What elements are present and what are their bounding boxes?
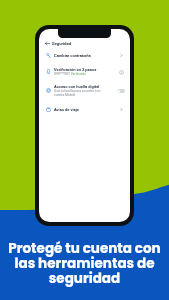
staticText: Usá tu huella para acceder a tu cuenta M… (54, 89, 101, 97)
button[interactable]: Verificación en 2 pasos (39, 63, 130, 80)
staticText: Acceso con huella digital (54, 84, 100, 89)
other: More info (117, 68, 125, 76)
staticText: Cambiar contraseña (54, 53, 91, 58)
button[interactable]: Cambiar contraseña (39, 47, 130, 63)
other: Back (45, 41, 50, 46)
staticText: Seguridad (52, 41, 72, 46)
staticText: Protegé tu cuenta con las herramientas d… (3, 239, 166, 288)
staticText: 099***987 Verificado (54, 72, 86, 76)
button[interactable]: Acceso con huella digital (39, 80, 130, 101)
other: Open (117, 51, 125, 59)
other: Toggle (117, 87, 125, 95)
staticText: Aviso de viaje (54, 107, 79, 112)
other: Open (117, 105, 125, 113)
staticText: Verificación en 2 pasos (54, 67, 97, 72)
button[interactable]: Aviso de viaje (39, 101, 130, 117)
button[interactable]: Back (39, 39, 130, 47)
